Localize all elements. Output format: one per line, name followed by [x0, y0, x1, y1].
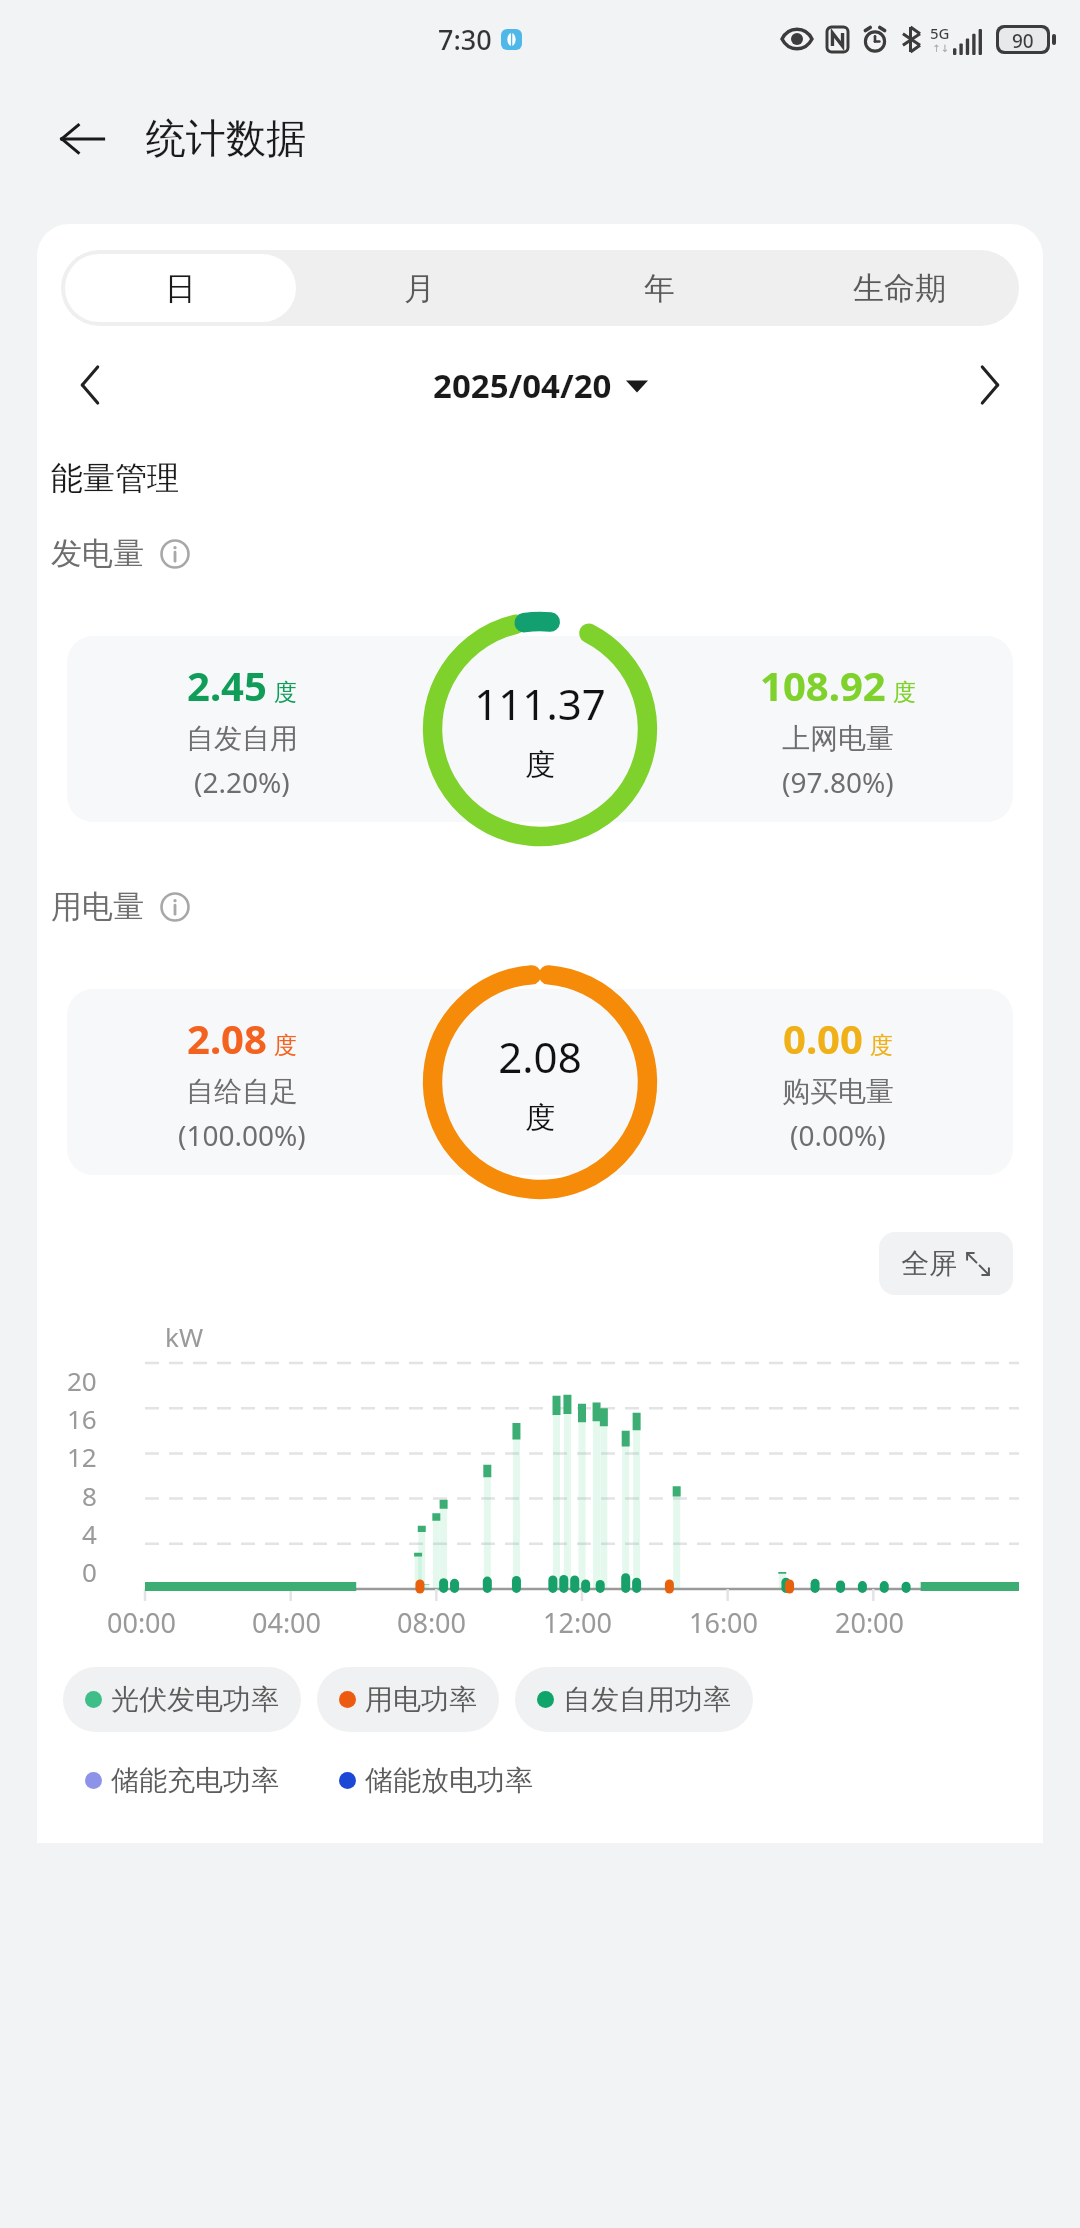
- button[interactable]: 储能放电功率: [317, 1748, 555, 1813]
- button[interactable]: 全屏: [879, 1232, 1013, 1295]
- staticText: 度: [274, 678, 297, 707]
- staticText: 90: [1012, 28, 1034, 51]
- button[interactable]: 储能充电功率: [63, 1748, 301, 1813]
- staticText: 08:00: [397, 1604, 467, 1641]
- staticText: 月: [404, 269, 435, 308]
- button[interactable]: 月: [304, 254, 535, 322]
- staticText: 储能放电功率: [365, 1763, 533, 1798]
- button[interactable]: 下一天: [957, 352, 1023, 418]
- staticText: 2025/04/20: [433, 363, 612, 408]
- staticText: ↑↓: [932, 43, 949, 55]
- staticText: 12: [67, 1439, 97, 1474]
- staticText: 度: [893, 678, 916, 707]
- staticText: 度: [525, 1099, 555, 1137]
- staticText: 0: [82, 1554, 97, 1589]
- staticText: 日: [165, 269, 196, 308]
- button[interactable]: 光伏发电功率: [63, 1667, 301, 1732]
- staticText: 2.08: [498, 1028, 582, 1085]
- staticText: (100.00%): [178, 1116, 306, 1154]
- staticText: 20: [67, 1363, 97, 1398]
- staticText: 0.00: [783, 1011, 863, 1065]
- staticText: 00:00: [107, 1604, 177, 1641]
- staticText: 光伏发电功率: [111, 1682, 279, 1717]
- staticText: 上网电量: [782, 721, 894, 756]
- staticText: 度: [274, 1031, 297, 1060]
- staticText: 用电功率: [365, 1682, 477, 1717]
- staticText: 5G: [930, 23, 950, 43]
- staticText: 度: [525, 746, 555, 784]
- staticText: 自发自用功率: [563, 1682, 731, 1717]
- staticText: 7:30: [438, 21, 492, 58]
- button[interactable]: 用电功率: [317, 1667, 499, 1732]
- staticText: 4: [82, 1516, 97, 1551]
- staticText: 108.92: [760, 658, 886, 712]
- staticText: 发电量: [51, 534, 144, 573]
- button[interactable]: 2025/04/20: [433, 363, 648, 408]
- staticText: (97.80%): [782, 763, 894, 801]
- button[interactable]: 日: [65, 254, 296, 322]
- staticText: 全屏: [901, 1246, 957, 1281]
- staticText: 2.45: [187, 658, 267, 712]
- staticText: 111.37: [474, 675, 606, 732]
- staticText: 购买电量: [782, 1074, 894, 1109]
- staticText: kW: [165, 1319, 204, 1354]
- staticText: 自给自足: [186, 1074, 298, 1109]
- staticText: (2.20%): [194, 763, 290, 801]
- staticText: 12:00: [543, 1604, 613, 1641]
- button[interactable]: 说明: [158, 537, 192, 571]
- staticText: 自发自用: [186, 721, 298, 756]
- staticText: 统计数据: [146, 113, 306, 163]
- staticText: (0.00%): [790, 1116, 886, 1154]
- button[interactable]: 返回: [48, 104, 116, 172]
- staticText: 16: [67, 1401, 97, 1436]
- button[interactable]: 自发自用功率: [515, 1667, 753, 1732]
- staticText: 16:00: [689, 1604, 759, 1641]
- staticText: 用电量: [51, 887, 144, 926]
- staticText: 度: [870, 1031, 893, 1060]
- staticText: 8: [82, 1478, 97, 1513]
- staticText: 年: [644, 269, 675, 308]
- staticText: 04:00: [252, 1604, 322, 1641]
- staticText: 能量管理: [51, 458, 179, 498]
- staticText: 生命期: [853, 269, 946, 308]
- button[interactable]: 上一天: [57, 352, 123, 418]
- staticText: 2.08: [187, 1011, 267, 1065]
- staticText: 20:00: [835, 1604, 905, 1641]
- staticText: 储能充电功率: [111, 1763, 279, 1798]
- button[interactable]: 说明: [158, 890, 192, 924]
- button[interactable]: 年: [543, 254, 775, 322]
- button[interactable]: 生命期: [783, 254, 1015, 322]
